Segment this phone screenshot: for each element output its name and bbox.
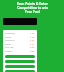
button[interactable]: Diesel	[5, 36, 35, 39]
staticText: 0.65	[30, 50, 35, 53]
staticText: 1.71	[30, 43, 35, 46]
button[interactable]	[5, 55, 35, 58]
staticText: AdBlue	[5, 50, 13, 53]
staticText: Earn Points & Enter	[17, 2, 48, 6]
staticText: Premium	[5, 39, 15, 42]
staticText: 0.89	[30, 46, 35, 49]
button[interactable]	[5, 65, 35, 68]
button[interactable]: Unleaded	[5, 32, 35, 35]
button[interactable]: AdBlue	[5, 50, 35, 53]
staticText: LPG Gas	[5, 46, 14, 49]
button[interactable]: Super	[5, 43, 35, 46]
button[interactable]: LPG Gas	[5, 46, 35, 49]
staticText: Super	[5, 43, 12, 46]
staticText: 1.67	[30, 39, 35, 42]
button[interactable]	[5, 60, 35, 63]
staticText: Free Fuel	[25, 10, 40, 14]
staticText: 1.45	[30, 32, 35, 35]
staticText: Competition to win	[17, 6, 48, 10]
button[interactable]: Premium	[5, 39, 35, 42]
staticText: Diesel	[5, 36, 12, 39]
button[interactable]	[5, 70, 35, 72]
staticText: Unleaded	[5, 32, 15, 35]
staticText: 1.52	[30, 36, 35, 39]
